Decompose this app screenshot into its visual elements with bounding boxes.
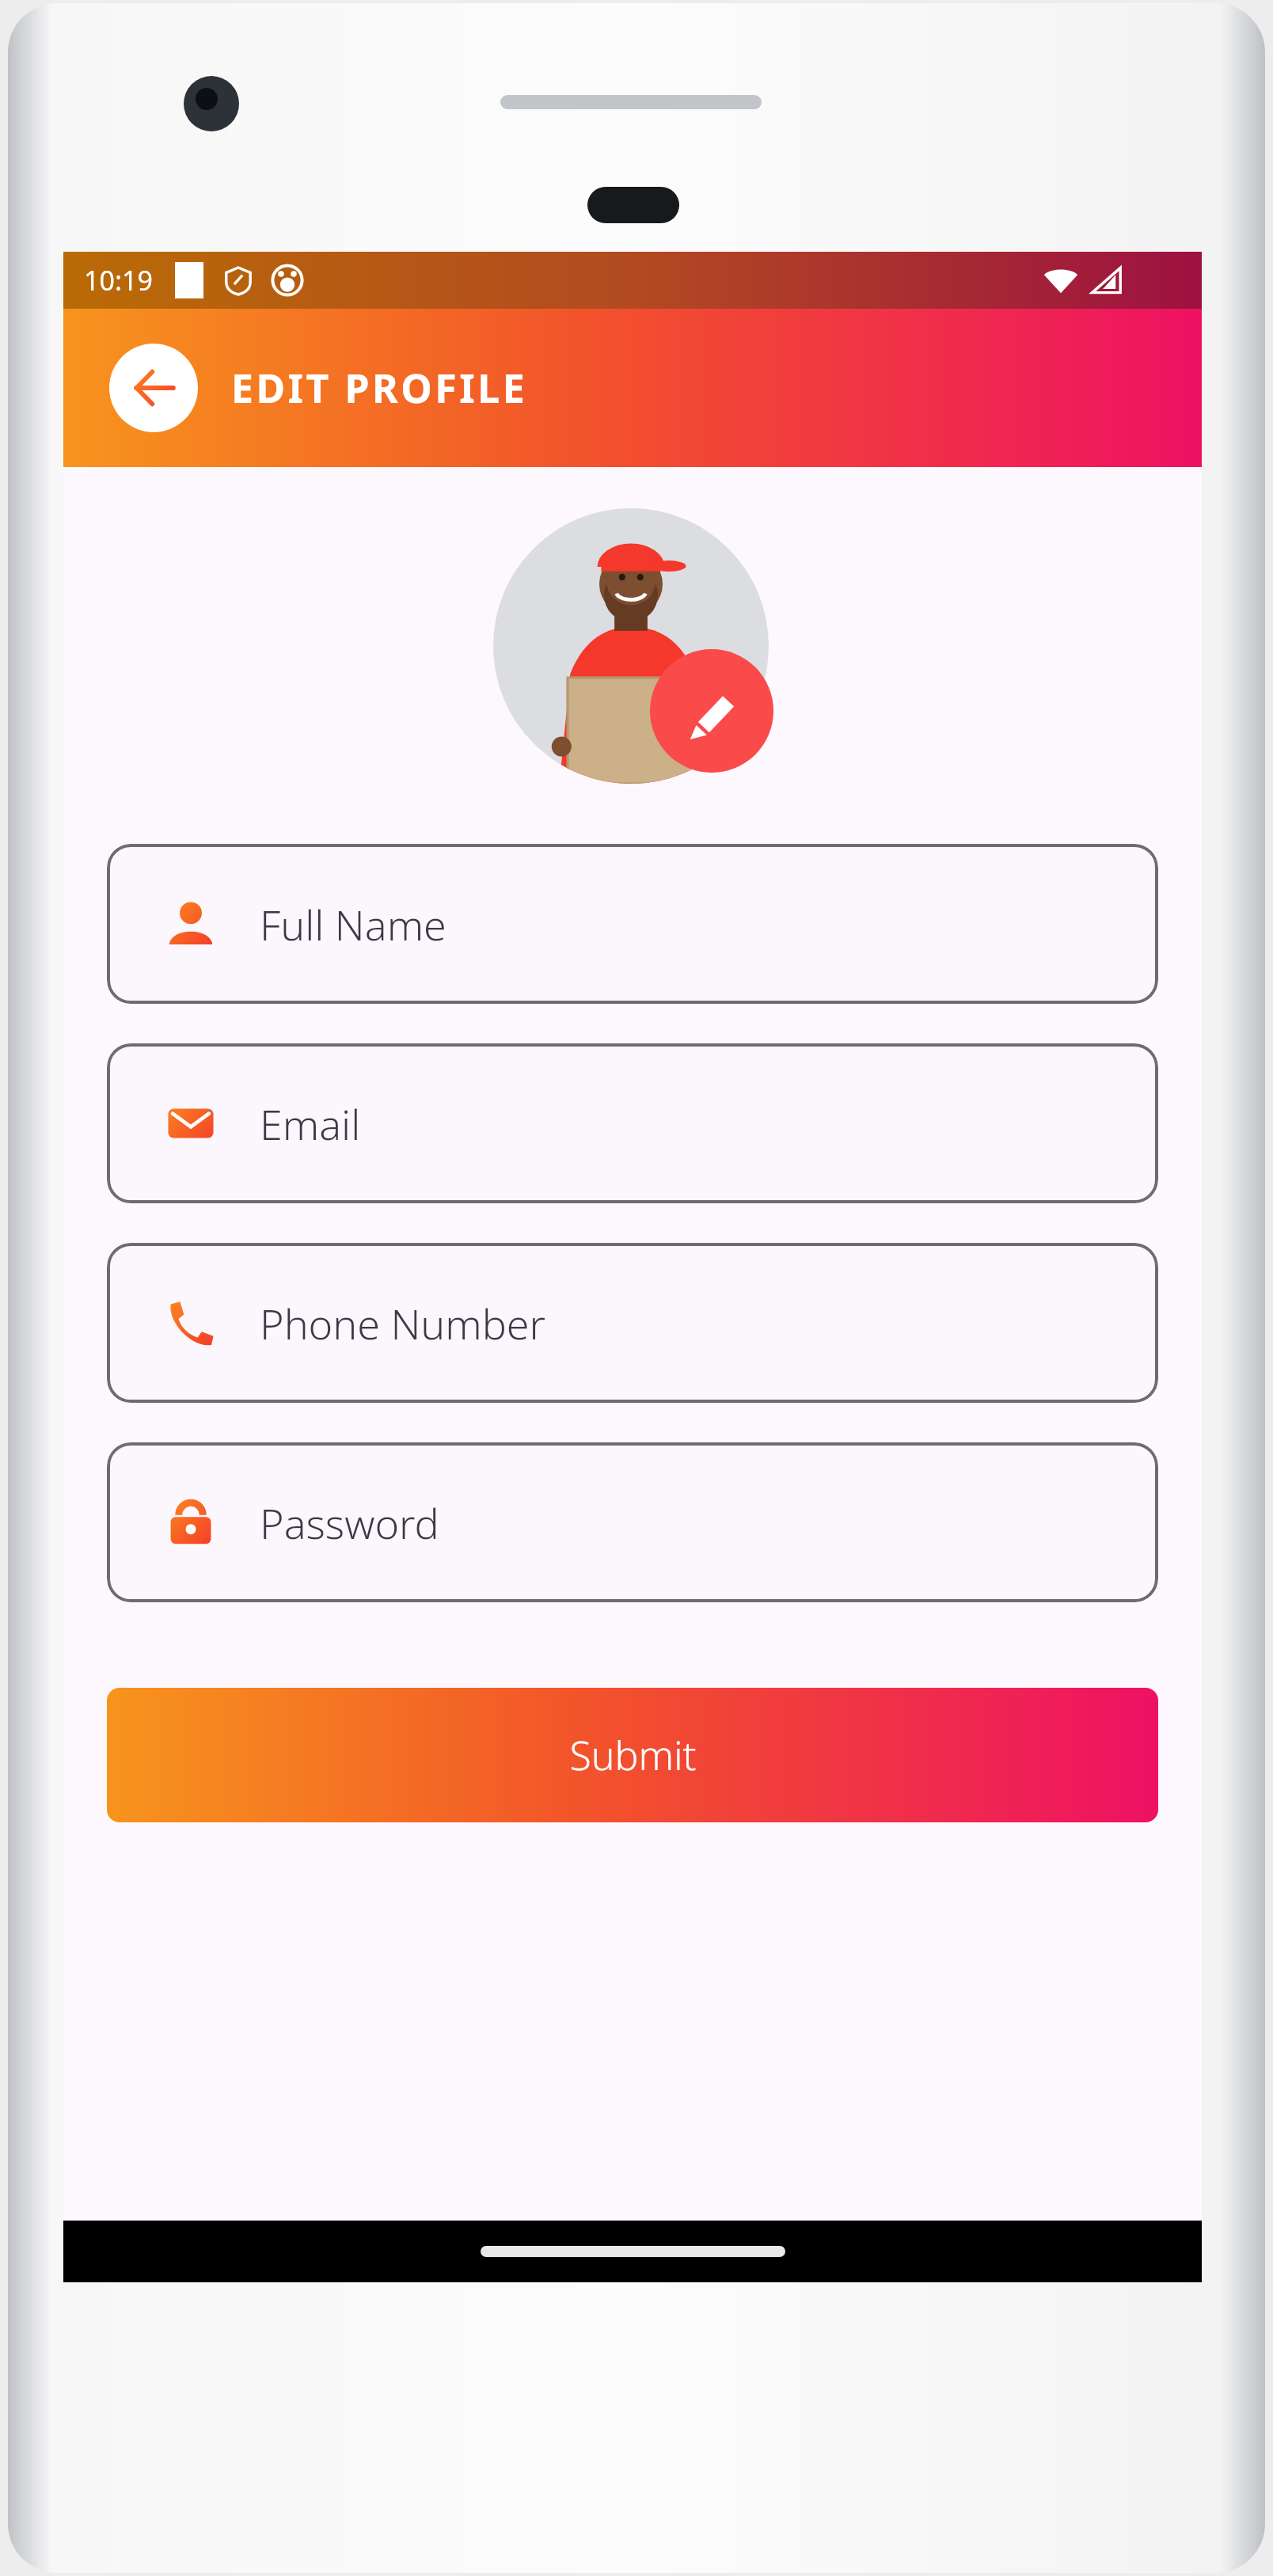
staticText: EDIT PROFILE <box>231 361 528 415</box>
button[interactable]: Back <box>109 344 198 432</box>
button[interactable]: Profile photo <box>493 508 769 784</box>
button[interactable]: Password <box>107 1442 1158 1602</box>
button[interactable]: Submit <box>107 1688 1158 1822</box>
staticText: Full Name <box>260 896 446 952</box>
staticText: Password <box>260 1495 439 1551</box>
staticText: Email <box>260 1096 361 1152</box>
staticText: Submit <box>569 1728 697 1782</box>
button[interactable]: Email <box>107 1043 1158 1203</box>
button[interactable]: Full Name <box>107 844 1158 1004</box>
staticText: 10:19 <box>84 262 153 298</box>
button[interactable]: Phone Number <box>107 1243 1158 1403</box>
staticText: Phone Number <box>260 1295 546 1351</box>
button[interactable]: Edit photo <box>650 649 773 773</box>
